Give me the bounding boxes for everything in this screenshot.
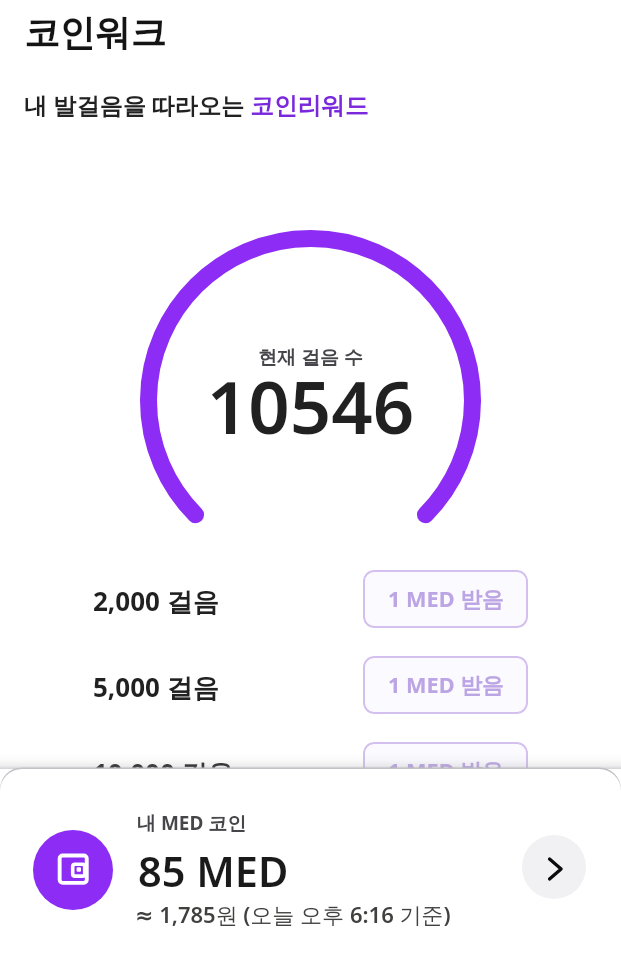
staticText: 코인워크 [24,11,166,56]
staticText: 5,000 걸음 [93,669,219,705]
staticText: 10,000 걸음 [93,755,234,791]
staticText: 1 MED 받음 [388,584,504,614]
staticText: 2,000 걸음 [93,583,219,619]
button[interactable]: 10,000 걸음 [0,730,350,816]
staticText: 내 MED 코인 [137,810,247,836]
button[interactable]: 1 MED 받음 [363,656,528,714]
button[interactable]: MED 지갑 [33,830,113,910]
staticText: 코인리워드 [250,91,369,121]
button[interactable]: 5,000 걸음 [0,644,350,730]
staticText: 1 MED 받음 [388,670,504,700]
staticText: 10546 [0,356,621,455]
staticText: 내 발걸음을 따라오는 [24,89,244,121]
button[interactable]: 1 MED 받음 [363,570,528,628]
staticText: 1 MED 받음 [388,756,504,786]
staticText: 현재 걸음 수 [0,344,621,370]
button[interactable]: 2,000 걸음 [0,558,350,644]
button[interactable]: 자세히 보기 [522,835,586,899]
button[interactable]: 1 MED 받음 [363,742,528,800]
staticText: ≈ 1,785원 (오늘 오후 6:16 기준) [135,899,451,929]
staticText: 85 MED [138,843,289,900]
